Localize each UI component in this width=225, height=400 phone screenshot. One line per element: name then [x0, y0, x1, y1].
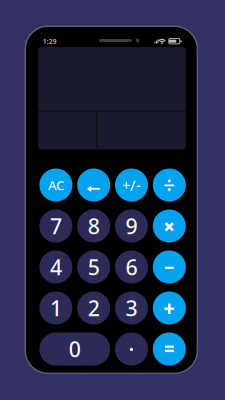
staticText: 1:29 — [43, 37, 57, 46]
button[interactable]: 3 — [115, 291, 148, 324]
button[interactable]: 1 — [39, 291, 72, 324]
button[interactable] — [153, 250, 186, 283]
button[interactable]: 9 — [115, 209, 148, 242]
button[interactable] — [153, 291, 186, 324]
staticText: 4 — [50, 253, 62, 281]
staticText: 0 — [69, 335, 81, 363]
button[interactable]: 7 — [39, 209, 72, 242]
staticText: 2 — [88, 294, 100, 322]
button[interactable] — [153, 168, 186, 201]
button[interactable]: AC — [39, 168, 72, 201]
button[interactable]: 5 — [77, 250, 110, 283]
button[interactable]: +/- — [115, 168, 148, 201]
staticText: 5 — [88, 253, 100, 281]
button[interactable]: 6 — [115, 250, 148, 283]
staticText: +/- — [122, 175, 141, 195]
button[interactable]: 2 — [77, 291, 110, 324]
button[interactable]: 4 — [39, 250, 72, 283]
button[interactable] — [77, 168, 110, 201]
button[interactable] — [153, 332, 186, 365]
staticText: 1 — [50, 294, 62, 322]
staticText: 6 — [125, 253, 137, 281]
staticText: 9 — [125, 212, 137, 240]
button[interactable]: 8 — [77, 209, 110, 242]
button[interactable] — [153, 209, 186, 242]
staticText: 3 — [125, 294, 137, 322]
button[interactable]: 0 — [39, 332, 110, 365]
button[interactable] — [115, 332, 148, 365]
staticText: 8 — [88, 212, 100, 240]
staticText: 7 — [50, 212, 62, 240]
staticText: AC — [48, 176, 64, 194]
